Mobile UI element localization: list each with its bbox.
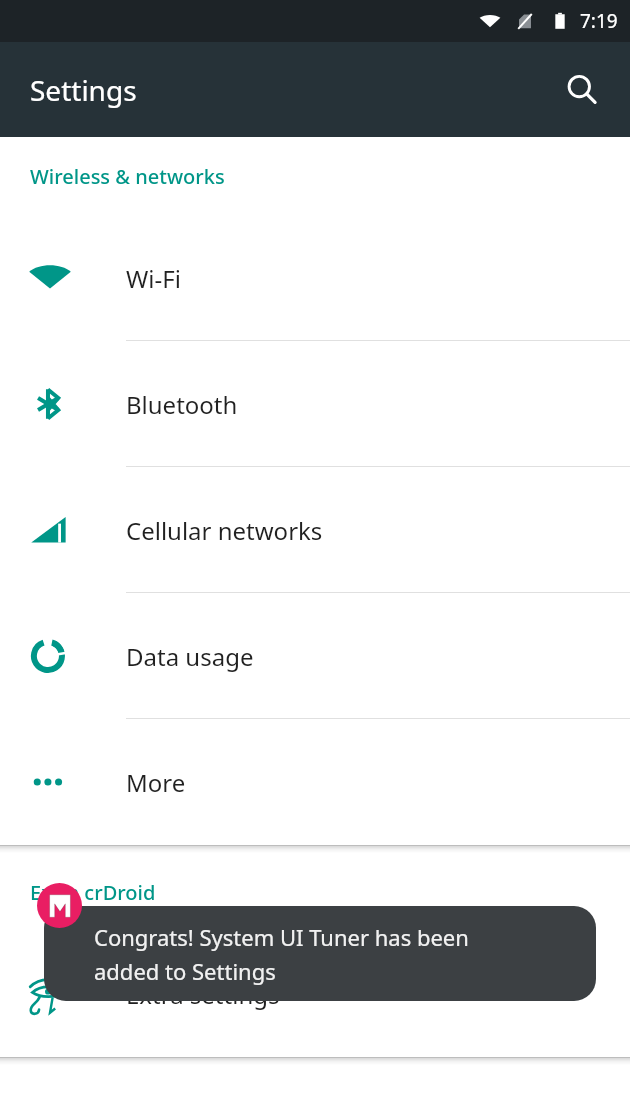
staticText: added to Settings: [94, 956, 276, 986]
staticText: Wireless & networks: [30, 163, 225, 190]
staticText: Wi-Fi: [126, 262, 181, 295]
staticText: Bluetooth: [126, 388, 238, 421]
button[interactable]: Extra settings: [0, 931, 630, 1057]
button[interactable]: Cellular networks: [0, 467, 630, 593]
button[interactable]: Bluetooth: [0, 341, 630, 467]
staticText: Congrats! System UI Tuner has been: [94, 922, 469, 952]
button[interactable]: Data usage: [0, 593, 630, 719]
staticText: More: [126, 766, 186, 799]
staticText: 7:19: [580, 8, 618, 34]
button[interactable]: Search: [548, 56, 616, 124]
button[interactable]: Wi-Fi: [0, 215, 630, 341]
staticText: Extra settings: [126, 978, 280, 1011]
staticText: Cellular networks: [126, 514, 323, 547]
button[interactable]: More: [0, 719, 630, 845]
staticText: Settings: [30, 71, 137, 109]
staticText: Data usage: [126, 640, 254, 673]
staticText: Extra crDroid: [30, 879, 156, 906]
